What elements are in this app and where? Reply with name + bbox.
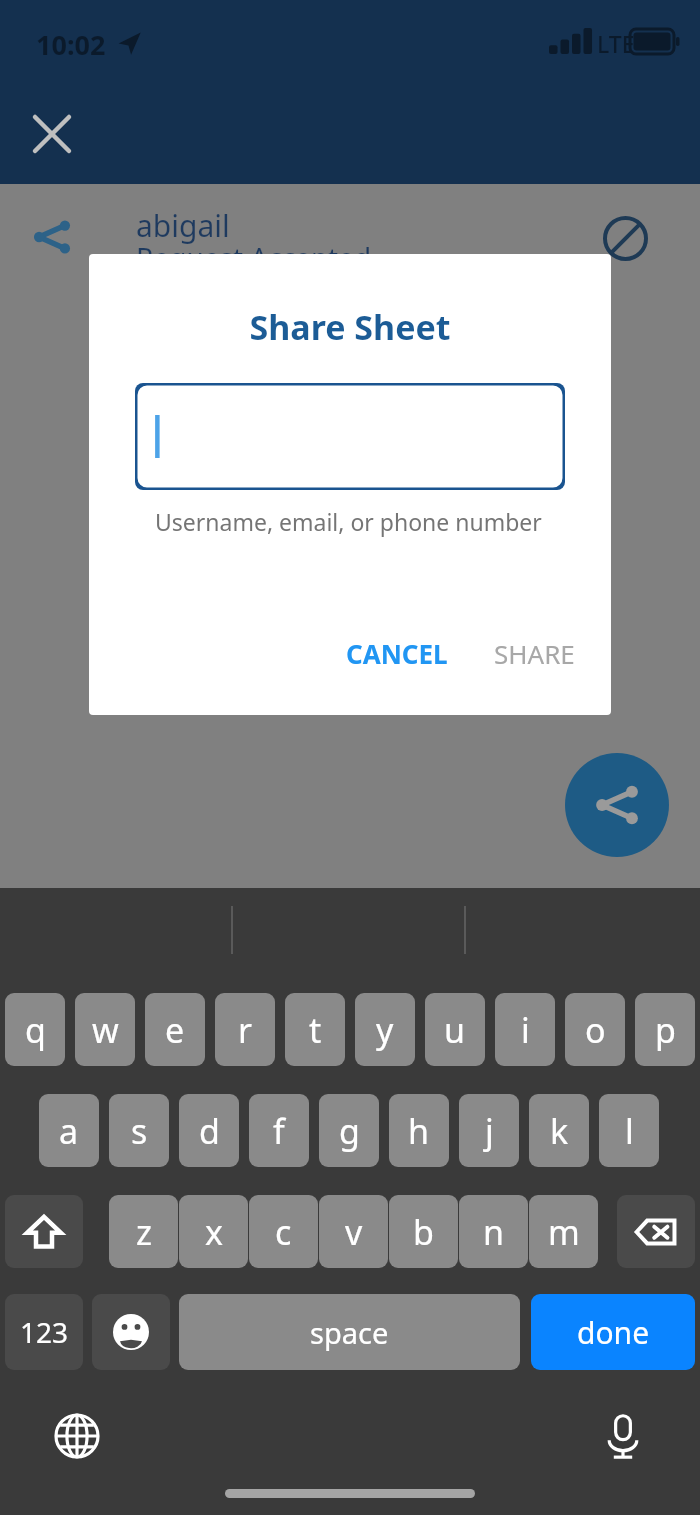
staticText: x — [205, 1209, 223, 1255]
button[interactable]: l — [599, 1094, 659, 1167]
button[interactable]: x — [179, 1195, 248, 1268]
staticText: o — [585, 1007, 606, 1053]
staticText: t — [309, 1007, 322, 1053]
staticText: l — [625, 1108, 634, 1154]
staticText: g — [339, 1108, 360, 1154]
staticText: d — [199, 1108, 220, 1154]
staticText: i — [521, 1007, 530, 1053]
button[interactable]: k — [529, 1094, 589, 1167]
button[interactable]: s — [109, 1094, 169, 1167]
button[interactable]: done — [531, 1294, 695, 1370]
staticText: 10:02 — [36, 26, 106, 63]
button[interactable]: i — [495, 993, 555, 1066]
button[interactable]: w — [75, 993, 135, 1066]
staticText: c — [275, 1209, 292, 1255]
button[interactable]: Voice input — [593, 1406, 653, 1466]
button[interactable]: v — [319, 1195, 388, 1268]
button[interactable]: 123 — [5, 1294, 83, 1370]
staticText: z — [136, 1209, 152, 1255]
button[interactable]: c — [249, 1195, 318, 1268]
button[interactable]: n — [459, 1195, 528, 1268]
button[interactable]: Backspace — [617, 1195, 695, 1268]
staticText: f — [273, 1108, 285, 1154]
staticText: abigail — [136, 205, 230, 246]
staticText: Share Sheet — [89, 304, 611, 350]
button[interactable]: Change keyboard language — [47, 1406, 107, 1466]
button[interactable]: Emoji — [92, 1294, 170, 1370]
staticText: n — [483, 1209, 505, 1255]
button[interactable]: SHARE — [480, 626, 589, 681]
button[interactable]: t — [285, 993, 345, 1066]
staticText: done — [577, 1312, 650, 1353]
button[interactable] — [135, 383, 565, 490]
button[interactable]: CANCEL — [332, 626, 462, 681]
button[interactable]: Share — [22, 207, 82, 267]
staticText: b — [413, 1209, 434, 1255]
staticText: m — [548, 1209, 580, 1255]
button[interactable]: j — [459, 1094, 519, 1167]
button[interactable]: b — [389, 1195, 458, 1268]
staticText: LTE — [597, 28, 635, 59]
staticText: q — [25, 1007, 46, 1053]
staticText: Request Accepted — [136, 238, 372, 276]
button[interactable]: o — [565, 993, 625, 1066]
staticText: e — [165, 1007, 185, 1053]
staticText: p — [655, 1007, 676, 1053]
staticText: SHARE — [494, 636, 575, 671]
staticText: space — [310, 1313, 389, 1352]
button[interactable]: u — [425, 993, 485, 1066]
button[interactable]: Block — [595, 208, 655, 268]
button[interactable]: y — [355, 993, 415, 1066]
staticText: a — [59, 1108, 79, 1154]
button[interactable]: d — [179, 1094, 239, 1167]
staticText: h — [408, 1108, 430, 1154]
button[interactable]: space — [179, 1294, 520, 1370]
button[interactable]: e — [145, 993, 205, 1066]
staticText: 123 — [20, 1313, 69, 1351]
button[interactable]: f — [249, 1094, 309, 1167]
staticText: y — [376, 1007, 394, 1053]
button[interactable]: Close — [22, 104, 82, 164]
button[interactable]: Share — [565, 753, 669, 857]
button[interactable]: m — [529, 1195, 598, 1268]
button[interactable]: a — [39, 1094, 99, 1167]
button[interactable]: g — [319, 1094, 379, 1167]
button[interactable]: r — [215, 993, 275, 1066]
staticText: s — [131, 1108, 148, 1154]
staticText: u — [444, 1007, 466, 1053]
button[interactable]: q — [5, 993, 65, 1066]
staticText: j — [485, 1108, 494, 1154]
staticText: Username, email, or phone number — [155, 506, 542, 537]
staticText: v — [345, 1209, 363, 1255]
button[interactable]: Shift — [5, 1195, 83, 1268]
staticText: r — [238, 1007, 253, 1053]
staticText: w — [92, 1007, 119, 1053]
button[interactable]: z — [109, 1195, 178, 1268]
staticText: CANCEL — [346, 636, 448, 671]
button[interactable]: p — [635, 993, 695, 1066]
staticText: k — [550, 1108, 569, 1154]
button[interactable]: h — [389, 1094, 449, 1167]
